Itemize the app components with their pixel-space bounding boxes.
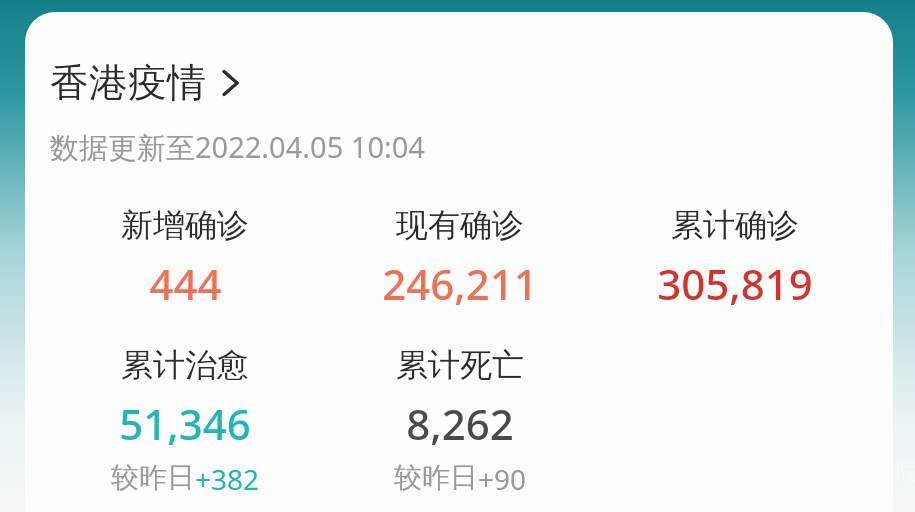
staticText: +382	[195, 460, 260, 498]
staticText: +90	[478, 460, 527, 498]
staticText: 305,819	[657, 255, 813, 312]
staticText: 现有确诊	[396, 205, 524, 245]
button[interactable]: 累计治愈	[25, 345, 345, 498]
staticText: 香港疫情	[50, 58, 206, 107]
button[interactable]: 香港疫情	[50, 58, 242, 107]
button[interactable]: 累计死亡	[310, 345, 610, 498]
staticText: 444	[149, 255, 222, 312]
button[interactable]: 新增确诊	[25, 205, 345, 312]
staticText: 51,346	[119, 395, 251, 452]
staticText: 较昨日	[394, 460, 478, 495]
staticText: 数据更新至2022.04.05 10:04	[50, 127, 425, 167]
staticText: 昆仑策研究院	[766, 455, 915, 488]
staticText: 累计治愈	[121, 345, 249, 385]
staticText: 累计死亡	[396, 345, 524, 385]
button[interactable]: 累计确诊	[580, 205, 890, 312]
staticText: 新增确诊	[121, 205, 249, 245]
staticText: 8,262	[406, 395, 514, 452]
staticText: 246,211	[382, 255, 538, 312]
button[interactable]: 现有确诊	[310, 205, 610, 312]
staticText: 较昨日	[111, 460, 195, 495]
staticText: 累计确诊	[671, 205, 799, 245]
